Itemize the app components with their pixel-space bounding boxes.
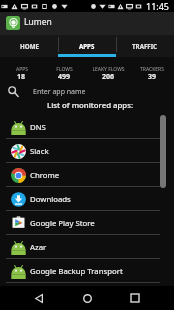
staticText: LEAKY FLOWS xyxy=(92,66,125,73)
staticText: APPS xyxy=(79,42,95,50)
button[interactable]: Home xyxy=(72,286,102,310)
button[interactable]: Chrome xyxy=(0,163,174,187)
staticText: Downloads xyxy=(30,194,71,205)
staticText: HOME xyxy=(20,42,39,50)
button[interactable]: Back xyxy=(24,286,53,310)
button[interactable]: Google Play Store xyxy=(0,211,174,235)
button[interactable]: TRAFFIC xyxy=(116,35,174,57)
staticText: Slack xyxy=(30,146,49,157)
button[interactable]: Azar xyxy=(0,235,174,259)
button[interactable]: LEAKY FLOWS xyxy=(86,62,130,79)
button[interactable]: Slack xyxy=(0,139,174,163)
staticText: 499 xyxy=(58,72,71,82)
button[interactable]: Search xyxy=(0,83,174,100)
staticText: DNS xyxy=(30,122,46,133)
staticText: 39 xyxy=(148,72,157,82)
staticText: Azar xyxy=(30,242,47,253)
button[interactable]: APPS xyxy=(58,35,116,57)
staticText: 18 xyxy=(17,72,26,82)
staticText: List of monitored apps: xyxy=(47,100,134,111)
button[interactable]: DNS xyxy=(0,115,174,139)
staticText: Enter app name xyxy=(33,87,86,97)
staticText: Chrome xyxy=(30,170,60,181)
staticText: Google Backup Transport xyxy=(30,266,123,277)
staticText: APPS xyxy=(16,66,28,73)
staticText: 11:45 xyxy=(146,0,170,12)
button[interactable]: Recents xyxy=(120,286,150,310)
button[interactable]: TRACKERS xyxy=(130,62,174,79)
staticText: TRACKERS xyxy=(140,66,164,73)
staticText: TRAFFIC xyxy=(132,42,158,50)
staticText: Lumen xyxy=(24,16,52,28)
staticText: FLOWS xyxy=(56,66,73,73)
button[interactable]: Downloads xyxy=(0,187,174,211)
staticText: Google Play Store xyxy=(30,218,95,229)
other: Search xyxy=(8,86,19,97)
button[interactable]: FLOWS xyxy=(43,62,86,79)
button[interactable]: APPS xyxy=(0,62,43,79)
button[interactable]: Google Backup Transport xyxy=(0,259,174,283)
button[interactable]: Lumen xyxy=(6,16,20,30)
staticText: 206 xyxy=(102,72,115,82)
button[interactable]: HOME xyxy=(0,35,58,57)
